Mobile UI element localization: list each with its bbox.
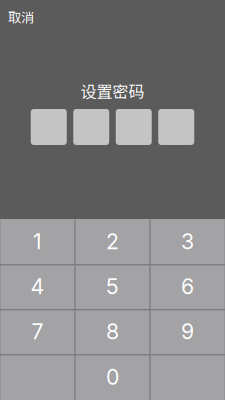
button[interactable]: 1 [0, 219, 75, 264]
staticText: 9 [181, 319, 194, 344]
staticText: 4 [30, 274, 44, 299]
staticText: 6 [181, 274, 194, 299]
button[interactable]: 5 [75, 264, 150, 309]
staticText: 5 [106, 274, 119, 299]
button[interactable]: 4 [0, 264, 75, 309]
button[interactable]: 取消 [8, 7, 34, 26]
button[interactable]: 3 [150, 219, 225, 264]
button[interactable]: 9 [150, 309, 225, 354]
staticText: 取消 [8, 7, 34, 26]
staticText: 7 [31, 319, 43, 344]
staticText: 2 [106, 229, 119, 254]
staticText: 8 [106, 319, 119, 344]
staticText: 0 [106, 364, 119, 390]
button[interactable]: 2 [75, 219, 150, 264]
staticText: 3 [181, 229, 194, 254]
button[interactable]: 6 [150, 264, 225, 309]
button[interactable]: 8 [75, 309, 150, 354]
staticText: 设置密码 [80, 79, 144, 102]
staticText: 1 [33, 229, 42, 254]
button[interactable]: 7 [0, 309, 75, 354]
button[interactable]: 0 [75, 354, 150, 400]
